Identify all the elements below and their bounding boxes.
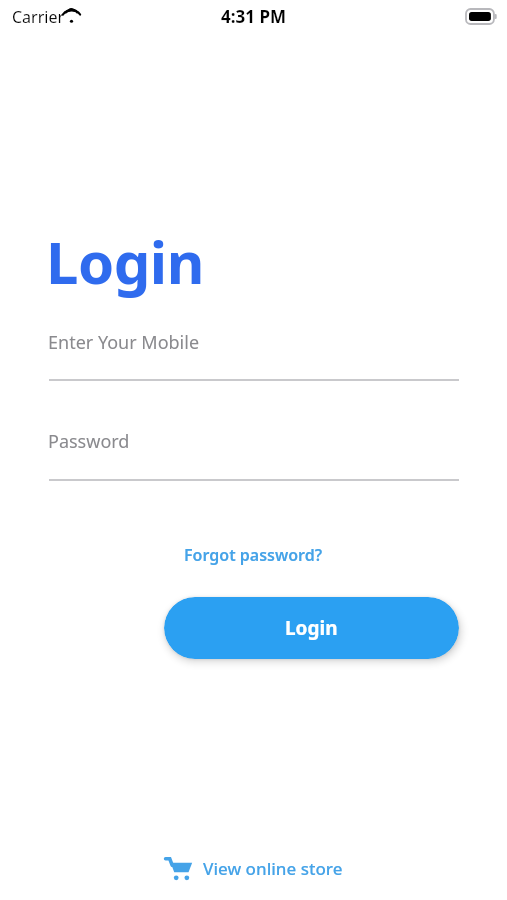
staticText: Carrier xyxy=(12,6,65,28)
button[interactable]: Forgot password? xyxy=(176,540,331,570)
staticText: Login xyxy=(46,222,204,301)
button[interactable]: Login xyxy=(164,597,459,659)
staticText: View online store xyxy=(203,857,343,880)
staticText: Password xyxy=(48,429,130,454)
staticText: Enter Your Mobile xyxy=(48,330,200,355)
staticText: 4:31 PM xyxy=(221,5,286,28)
other: View online store xyxy=(165,854,193,882)
button[interactable]: View online store xyxy=(155,848,353,888)
staticText: Login xyxy=(285,615,338,641)
staticText: Forgot password? xyxy=(184,544,323,566)
